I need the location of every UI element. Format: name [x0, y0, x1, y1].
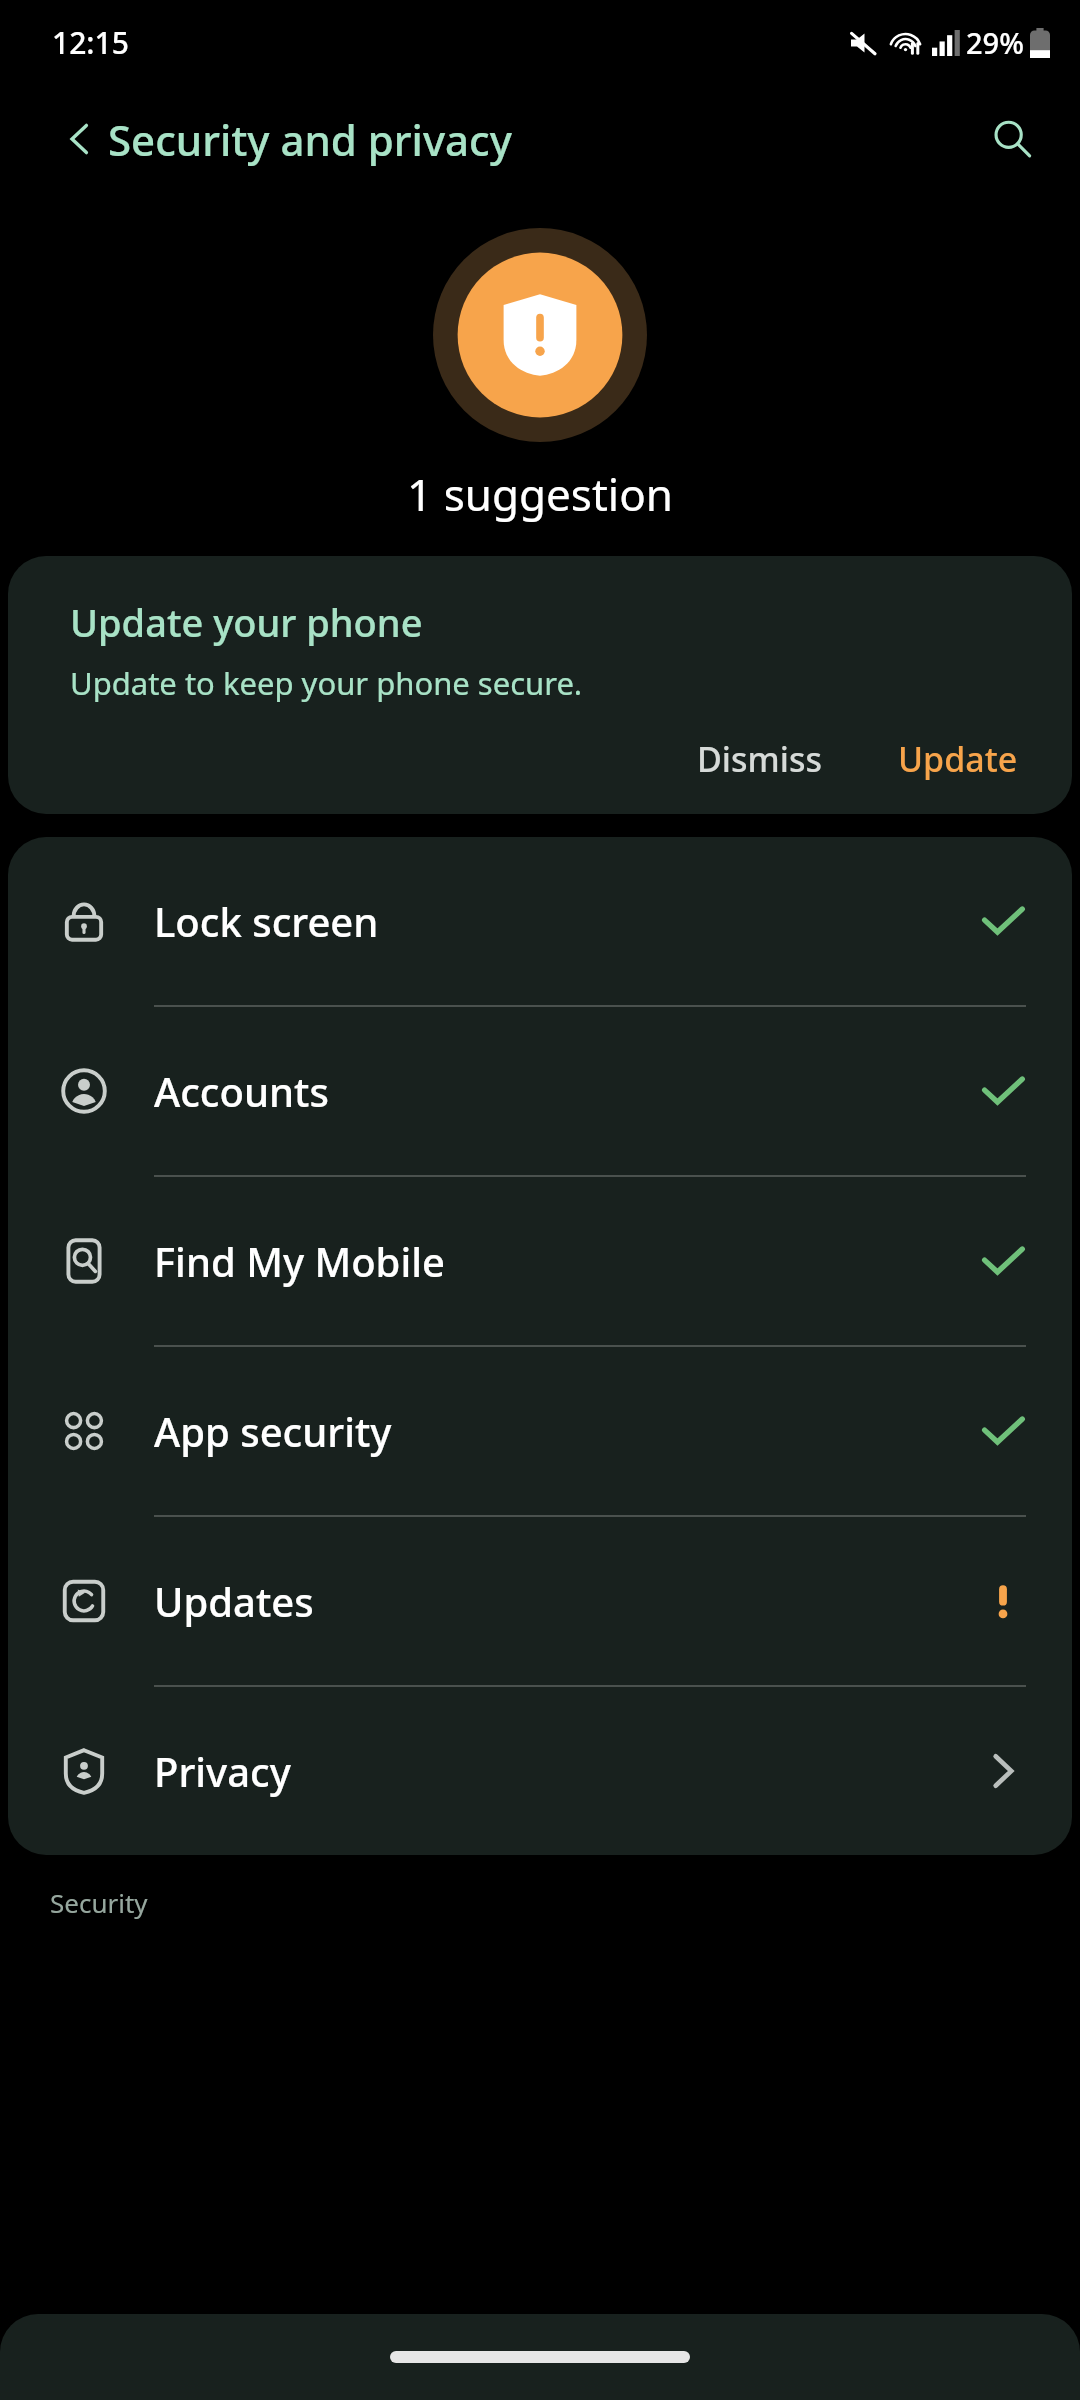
staticText: App security	[154, 1404, 980, 1458]
staticText: 29%	[966, 23, 1024, 62]
button[interactable]: Update	[878, 726, 1038, 792]
staticText: Find My Mobile	[154, 1234, 980, 1288]
staticText: Privacy	[154, 1744, 980, 1798]
button[interactable]: Updates	[8, 1517, 1072, 1685]
staticText: Security and privacy	[108, 111, 512, 168]
staticText: Update	[898, 736, 1018, 782]
staticText: Updates	[154, 1574, 980, 1628]
button[interactable]: Lock screen	[8, 837, 1072, 1005]
button[interactable]: Update your phone	[8, 556, 1072, 814]
staticText: Update your phone	[70, 596, 423, 648]
staticText: Lock screen	[154, 894, 980, 948]
staticText: Dismiss	[697, 736, 822, 782]
button[interactable]: Search	[976, 103, 1048, 175]
staticText: Security	[50, 1885, 148, 1920]
staticText: Accounts	[154, 1064, 980, 1118]
button[interactable]: Find My Mobile	[8, 1177, 1072, 1345]
button[interactable]: App security	[8, 1347, 1072, 1515]
staticText: Update to keep your phone secure.	[70, 662, 583, 704]
button[interactable]: Privacy	[8, 1687, 1072, 1855]
staticText: 1 suggestion	[0, 464, 1080, 524]
button[interactable]: Back	[48, 107, 112, 171]
button[interactable]: Dismiss	[677, 726, 842, 792]
staticText: 12:15	[52, 22, 129, 63]
button[interactable]: Accounts	[8, 1007, 1072, 1175]
